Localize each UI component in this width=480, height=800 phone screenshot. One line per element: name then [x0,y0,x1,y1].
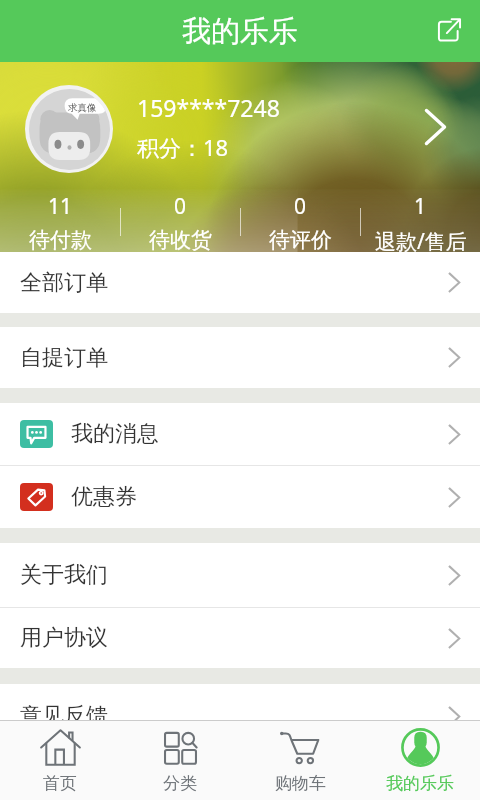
staticText: 全部订单 [20,269,108,297]
button[interactable]: 全部订单 [0,252,480,313]
button[interactable]: 购物车 [240,721,360,800]
staticText: 首页 [43,773,77,794]
staticText: 我的消息 [71,420,159,448]
staticText: 159****7248 [137,92,280,123]
button[interactable]: 用户协议 [0,608,480,668]
staticText: 待付款 [29,227,92,252]
staticText: 待收货 [149,227,212,252]
button[interactable]: 0 [241,192,360,252]
button[interactable]: 优惠券 [0,466,480,528]
staticText: 0 [174,192,187,221]
button[interactable]: 意见反馈 [0,684,480,720]
staticText: 购物车 [275,773,326,794]
button[interactable]: 首页 [0,721,120,800]
staticText: 优惠券 [71,483,137,511]
button[interactable]: 我的乐乐 [360,721,480,800]
staticText: 11 [48,192,73,221]
staticText: 用户协议 [20,624,108,652]
button[interactable]: 1 [361,192,480,252]
staticText: 关于我们 [20,561,108,589]
button[interactable]: 我的消息 [0,403,480,465]
button[interactable]: 0 [121,192,240,252]
staticText: 意见反馈 [20,702,108,720]
staticText: 待评价 [269,227,332,252]
staticText: 退款/售后 [375,227,467,252]
button[interactable]: 求真像 [0,62,480,192]
staticText: 我的乐乐 [386,773,454,794]
staticText: 1 [414,192,427,221]
staticText: 积分：18 [137,132,229,162]
button[interactable]: 分类 [120,721,240,800]
staticText: 0 [294,192,307,221]
staticText: 求真像 [68,102,97,114]
staticText: 分类 [163,773,197,794]
button[interactable]: 自提订单 [0,327,480,388]
staticText: 我的乐乐 [182,13,298,50]
button[interactable]: Share [427,7,471,51]
button[interactable]: 关于我们 [0,543,480,607]
staticText: 自提订单 [20,344,108,372]
button[interactable]: 11 [0,192,120,252]
